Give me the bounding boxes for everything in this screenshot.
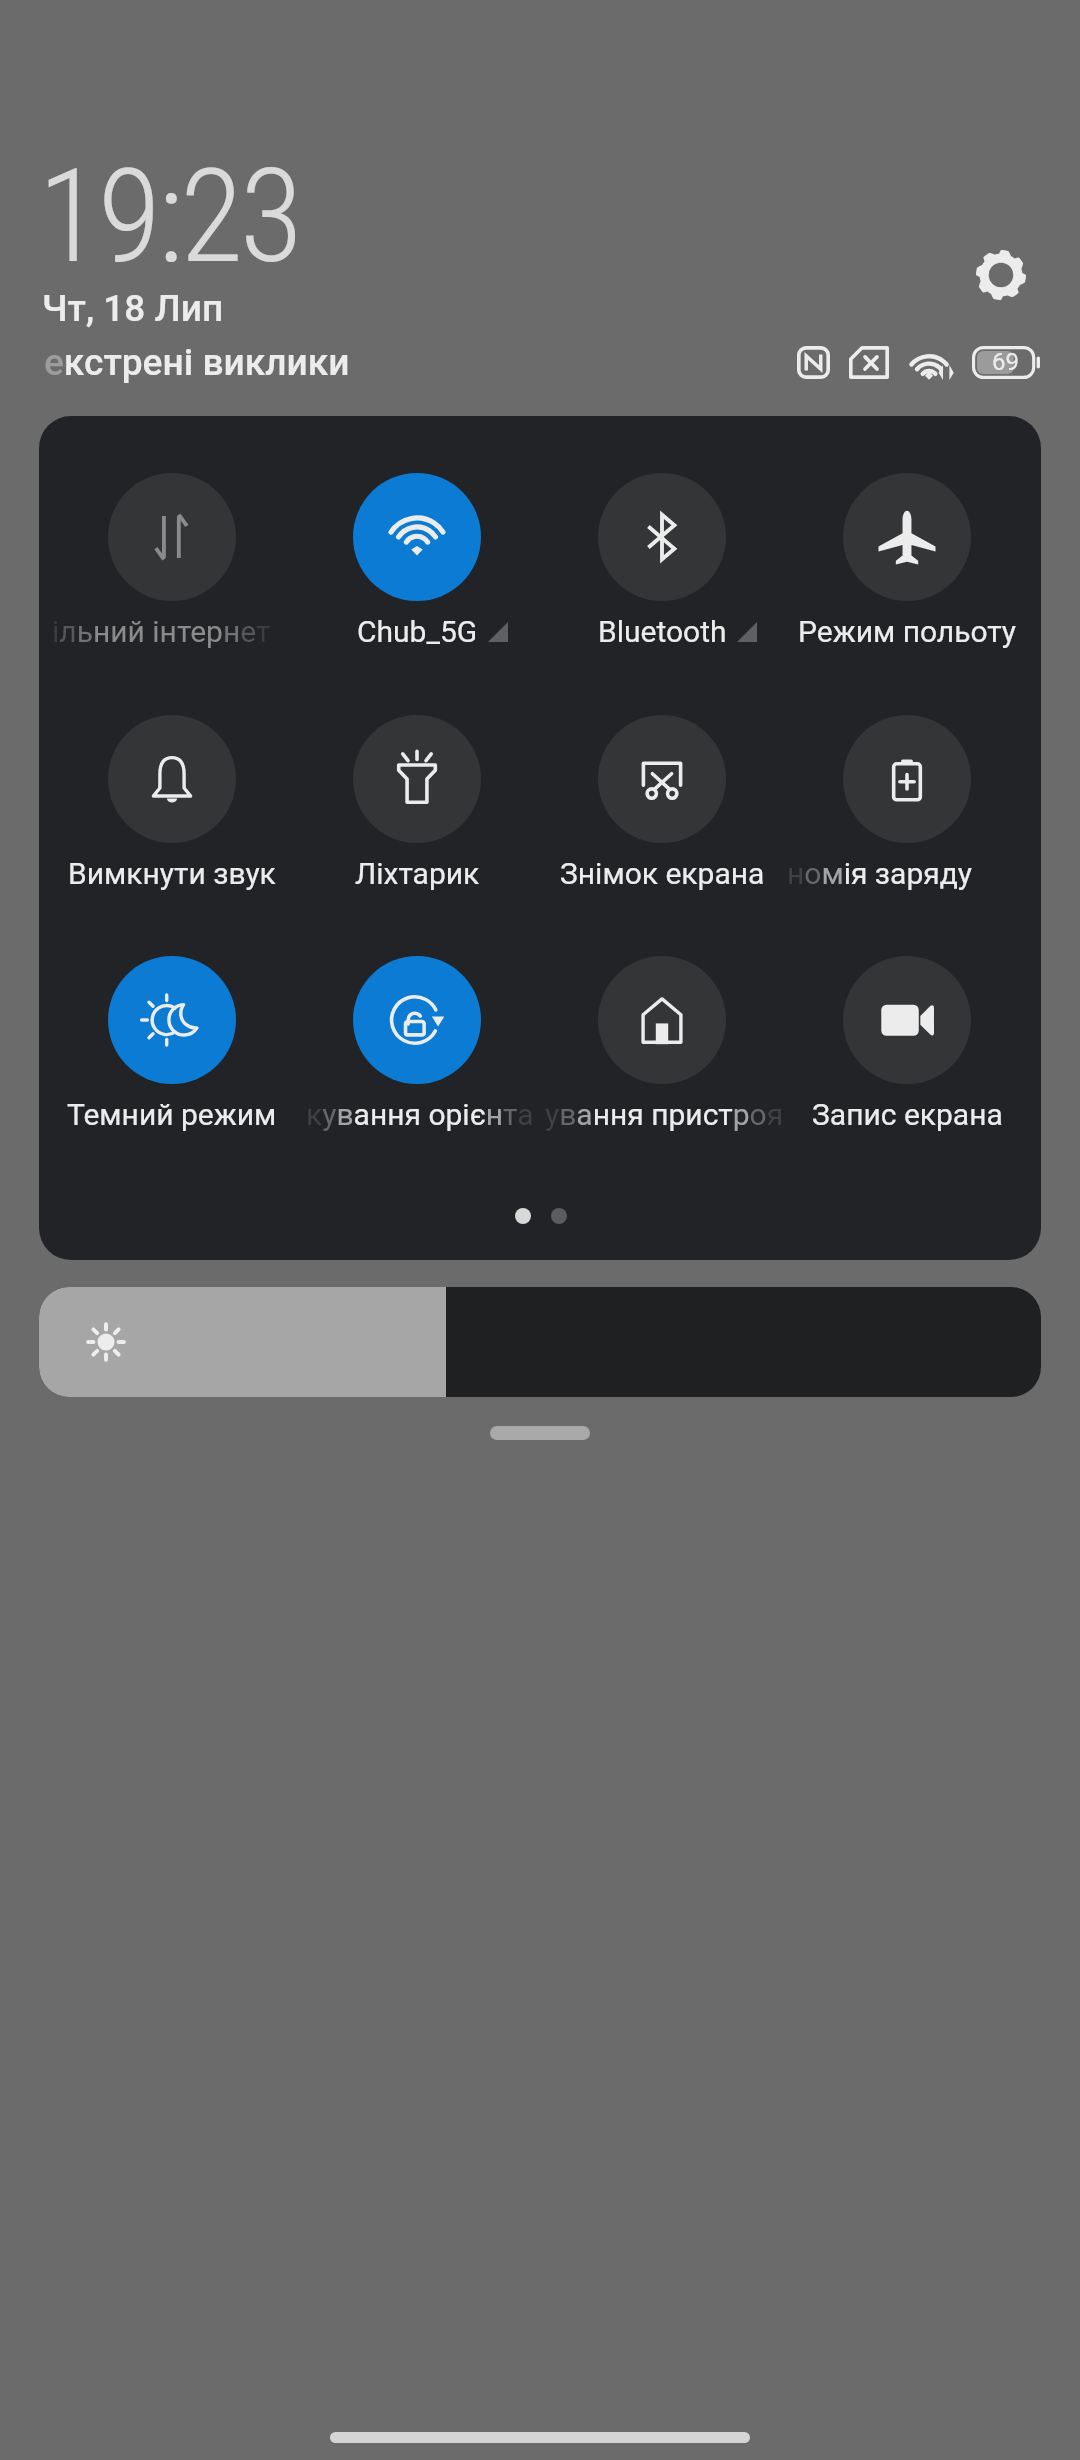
button[interactable]: [108, 473, 236, 663]
staticText: Темний режим: [67, 1097, 277, 1132]
button[interactable]: [843, 715, 971, 905]
staticText: ільний інтернет: [52, 614, 271, 649]
staticText: 69: [992, 348, 1019, 376]
staticText: Режим польоту: [798, 614, 1017, 649]
button[interactable]: [843, 473, 971, 663]
staticText: Чт, 18 Лип: [42, 287, 224, 330]
staticText: Знімок екрана: [560, 856, 765, 891]
button[interactable]: [108, 956, 236, 1146]
button[interactable]: [598, 956, 726, 1146]
button[interactable]: [353, 715, 481, 905]
button[interactable]: [353, 956, 481, 1146]
button[interactable]: [598, 715, 726, 905]
button[interactable]: [108, 715, 236, 905]
staticText: Ліхтарик: [355, 856, 480, 891]
staticText: Запис екрана: [812, 1097, 1003, 1132]
staticText: Вимкнути звук: [68, 856, 276, 891]
staticText: Chub_5G: [357, 614, 478, 649]
staticText: 19:23: [38, 140, 300, 292]
staticText: кування орієнта: [306, 1097, 534, 1132]
button[interactable]: Brightness: [39, 1287, 1041, 1397]
staticText: екстрені виклики: [44, 341, 350, 384]
button[interactable]: Settings: [953, 227, 1049, 323]
staticText: ування пристроя: [545, 1097, 784, 1132]
staticText: Bluetooth: [598, 614, 727, 649]
button[interactable]: [598, 473, 726, 663]
button[interactable]: [353, 473, 481, 663]
button[interactable]: [843, 956, 971, 1146]
staticText: номія заряду: [787, 856, 973, 891]
